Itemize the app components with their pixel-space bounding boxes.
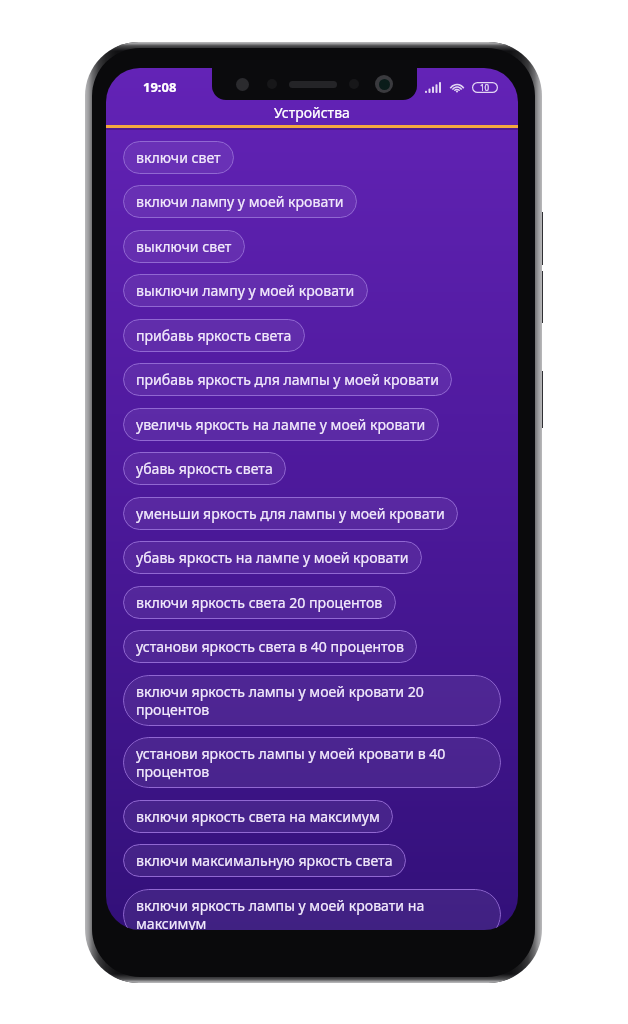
button[interactable]: включи лампу у моей кровати	[123, 185, 357, 218]
staticText: выключи свет	[136, 237, 232, 256]
staticText: 19:08	[143, 78, 177, 96]
staticText: включи яркость света 20 процентов	[136, 593, 383, 612]
staticText: прибавь яркость света	[136, 326, 292, 345]
button[interactable]: включи яркость лампы у моей кровати на м…	[123, 889, 501, 930]
staticText: выключи лампу у моей кровати	[136, 281, 355, 300]
button[interactable]: установи яркость света в 40 процентов	[123, 630, 417, 663]
staticText: уменьши яркость для лампы у моей кровати	[136, 504, 445, 523]
button[interactable]: убавь яркость на лампе у моей кровати	[123, 541, 422, 574]
staticText: включи яркость лампы у моей кровати 20 п…	[136, 682, 488, 719]
button[interactable]: увеличь яркость на лампе у моей кровати	[123, 408, 439, 441]
button[interactable]: включи яркость света на максимум	[123, 800, 393, 833]
staticText: Устройства	[274, 103, 350, 122]
staticText: убавь яркость на лампе у моей кровати	[136, 548, 409, 567]
staticText: включи яркость лампы у моей кровати на м…	[136, 896, 488, 930]
staticText: убавь яркость света	[136, 459, 273, 478]
staticText: включи лампу у моей кровати	[136, 192, 344, 211]
staticText: установи яркость света в 40 процентов	[136, 637, 404, 656]
staticText: прибавь яркость для лампы у моей кровати	[136, 370, 439, 389]
button[interactable]: включи яркость лампы у моей кровати 20 п…	[123, 675, 501, 726]
staticText: установи яркость лампы у моей кровати в …	[136, 744, 488, 781]
staticText: 10	[480, 82, 490, 93]
button[interactable]: выключи лампу у моей кровати	[123, 274, 368, 307]
staticText: включи свет	[136, 148, 221, 167]
staticText: увеличь яркость на лампе у моей кровати	[136, 415, 426, 434]
button[interactable]: уменьши яркость для лампы у моей кровати	[123, 497, 458, 530]
button[interactable]: включи свет	[123, 141, 234, 174]
button[interactable]: включи максимальную яркость света	[123, 844, 406, 877]
button[interactable]: убавь яркость света	[123, 452, 286, 485]
staticText: включи яркость света на максимум	[136, 807, 380, 826]
button[interactable]: включи яркость света 20 процентов	[123, 586, 396, 619]
button[interactable]: установи яркость лампы у моей кровати в …	[123, 737, 501, 788]
button[interactable]: прибавь яркость для лампы у моей кровати	[123, 363, 452, 396]
button[interactable]: прибавь яркость света	[123, 319, 305, 352]
staticText: включи максимальную яркость света	[136, 851, 393, 870]
button[interactable]: выключи свет	[123, 230, 245, 263]
